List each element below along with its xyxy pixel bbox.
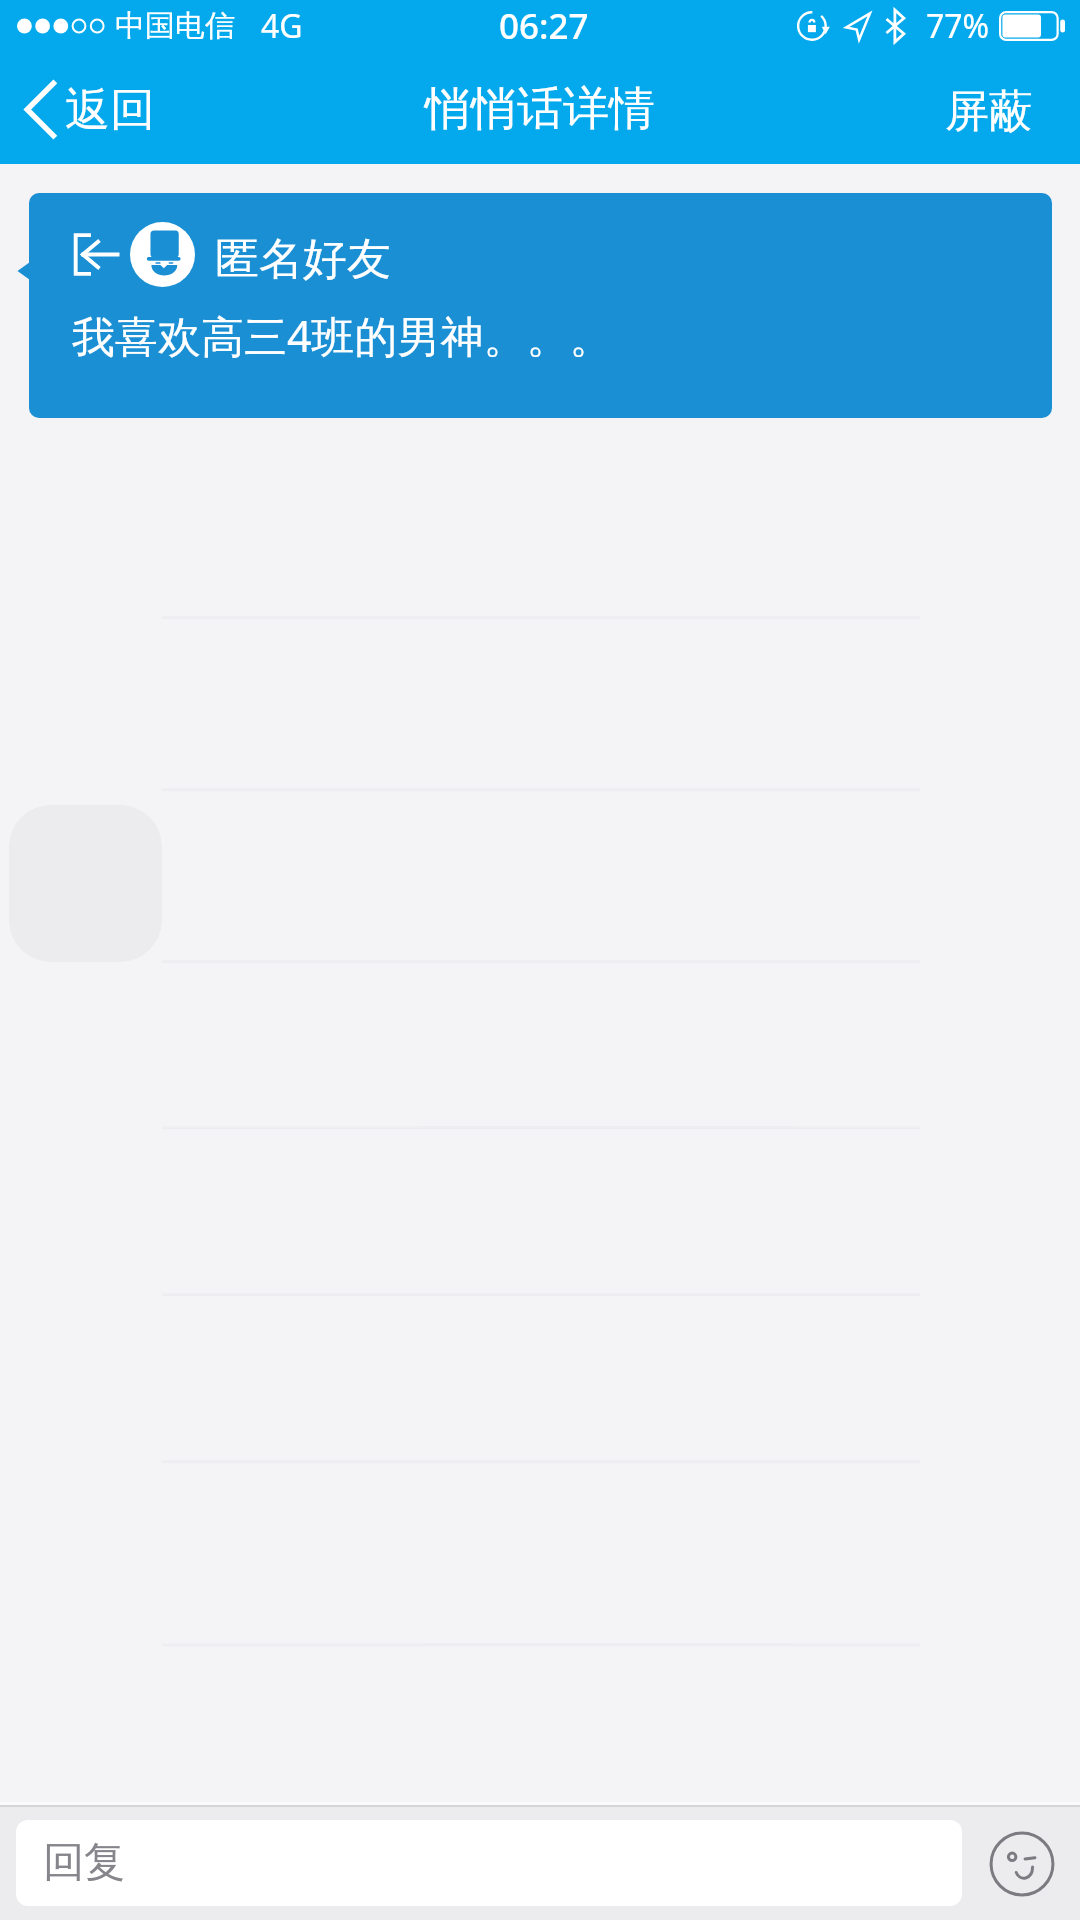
staticText: 06:27 (499, 2, 589, 50)
button[interactable]: 屏蔽 (923, 69, 1080, 148)
staticText: 77% (926, 4, 990, 48)
staticText: 我喜欢高三4班的男神。。。 (72, 306, 613, 365)
button[interactable]: 返回 (0, 68, 177, 149)
staticText: 返回 (65, 82, 155, 139)
button[interactable]: 回复 (16, 1820, 962, 1906)
staticText: 中国电信 (115, 7, 235, 45)
button[interactable]: Emoji (986, 1828, 1058, 1900)
staticText: 屏蔽 (945, 84, 1033, 139)
button[interactable]: 匿名好友 (17, 193, 1052, 418)
staticText: 匿名好友 (215, 232, 391, 287)
staticText: 回复 (43, 1837, 125, 1889)
staticText: 悄悄话详情 (425, 80, 655, 138)
staticText: 4G (261, 4, 303, 48)
